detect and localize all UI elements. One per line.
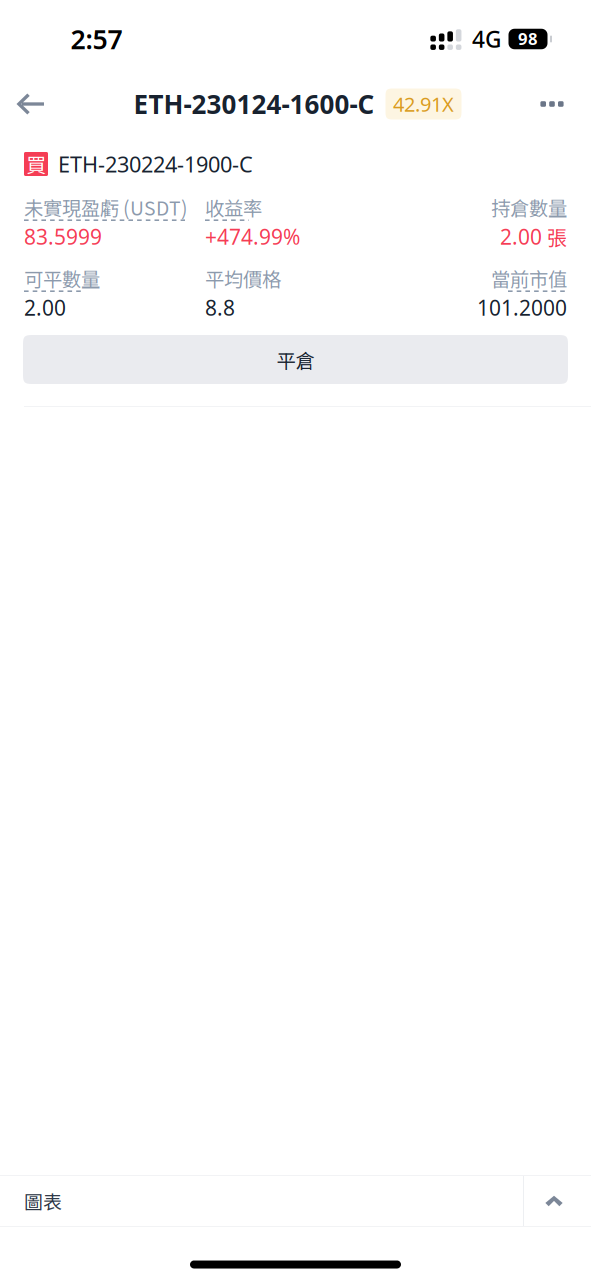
staticText: 圖表 [24, 1187, 62, 1215]
staticText: 101.2000 [477, 293, 567, 322]
button[interactable]: More options [513, 78, 591, 130]
button[interactable]: Back [0, 78, 61, 130]
staticText: 平倉 [276, 345, 314, 373]
staticText: 98 [518, 27, 538, 50]
staticText: ETH-230224-1900-C [58, 149, 253, 179]
staticText: 買 [26, 149, 46, 178]
staticText: 83.5999 [24, 222, 102, 251]
staticText: 8.8 [205, 293, 235, 322]
staticText: 張 [547, 222, 567, 251]
staticText: 2:57 [70, 21, 122, 57]
staticText: 可平數量 [24, 264, 100, 292]
staticText: ETH-230124-1600-C [133, 86, 374, 122]
button[interactable]: 平倉 [23, 335, 568, 384]
button[interactable]: Expand chart [524, 1176, 591, 1226]
staticText: 未實現盈虧 (USDT) [24, 193, 188, 221]
button[interactable]: 圖表 [0, 1176, 523, 1226]
staticText: 2.00 [500, 222, 542, 251]
staticText: 2.00 [24, 293, 66, 322]
staticText: 持倉數量 [491, 193, 567, 221]
staticText: 4G [472, 24, 501, 54]
staticText: 42.91X [393, 90, 454, 118]
staticText: 收益率 [205, 193, 262, 221]
staticText: 平均價格 [205, 264, 281, 292]
staticText: 當前市值 [491, 264, 567, 292]
staticText: +474.99% [205, 222, 300, 251]
